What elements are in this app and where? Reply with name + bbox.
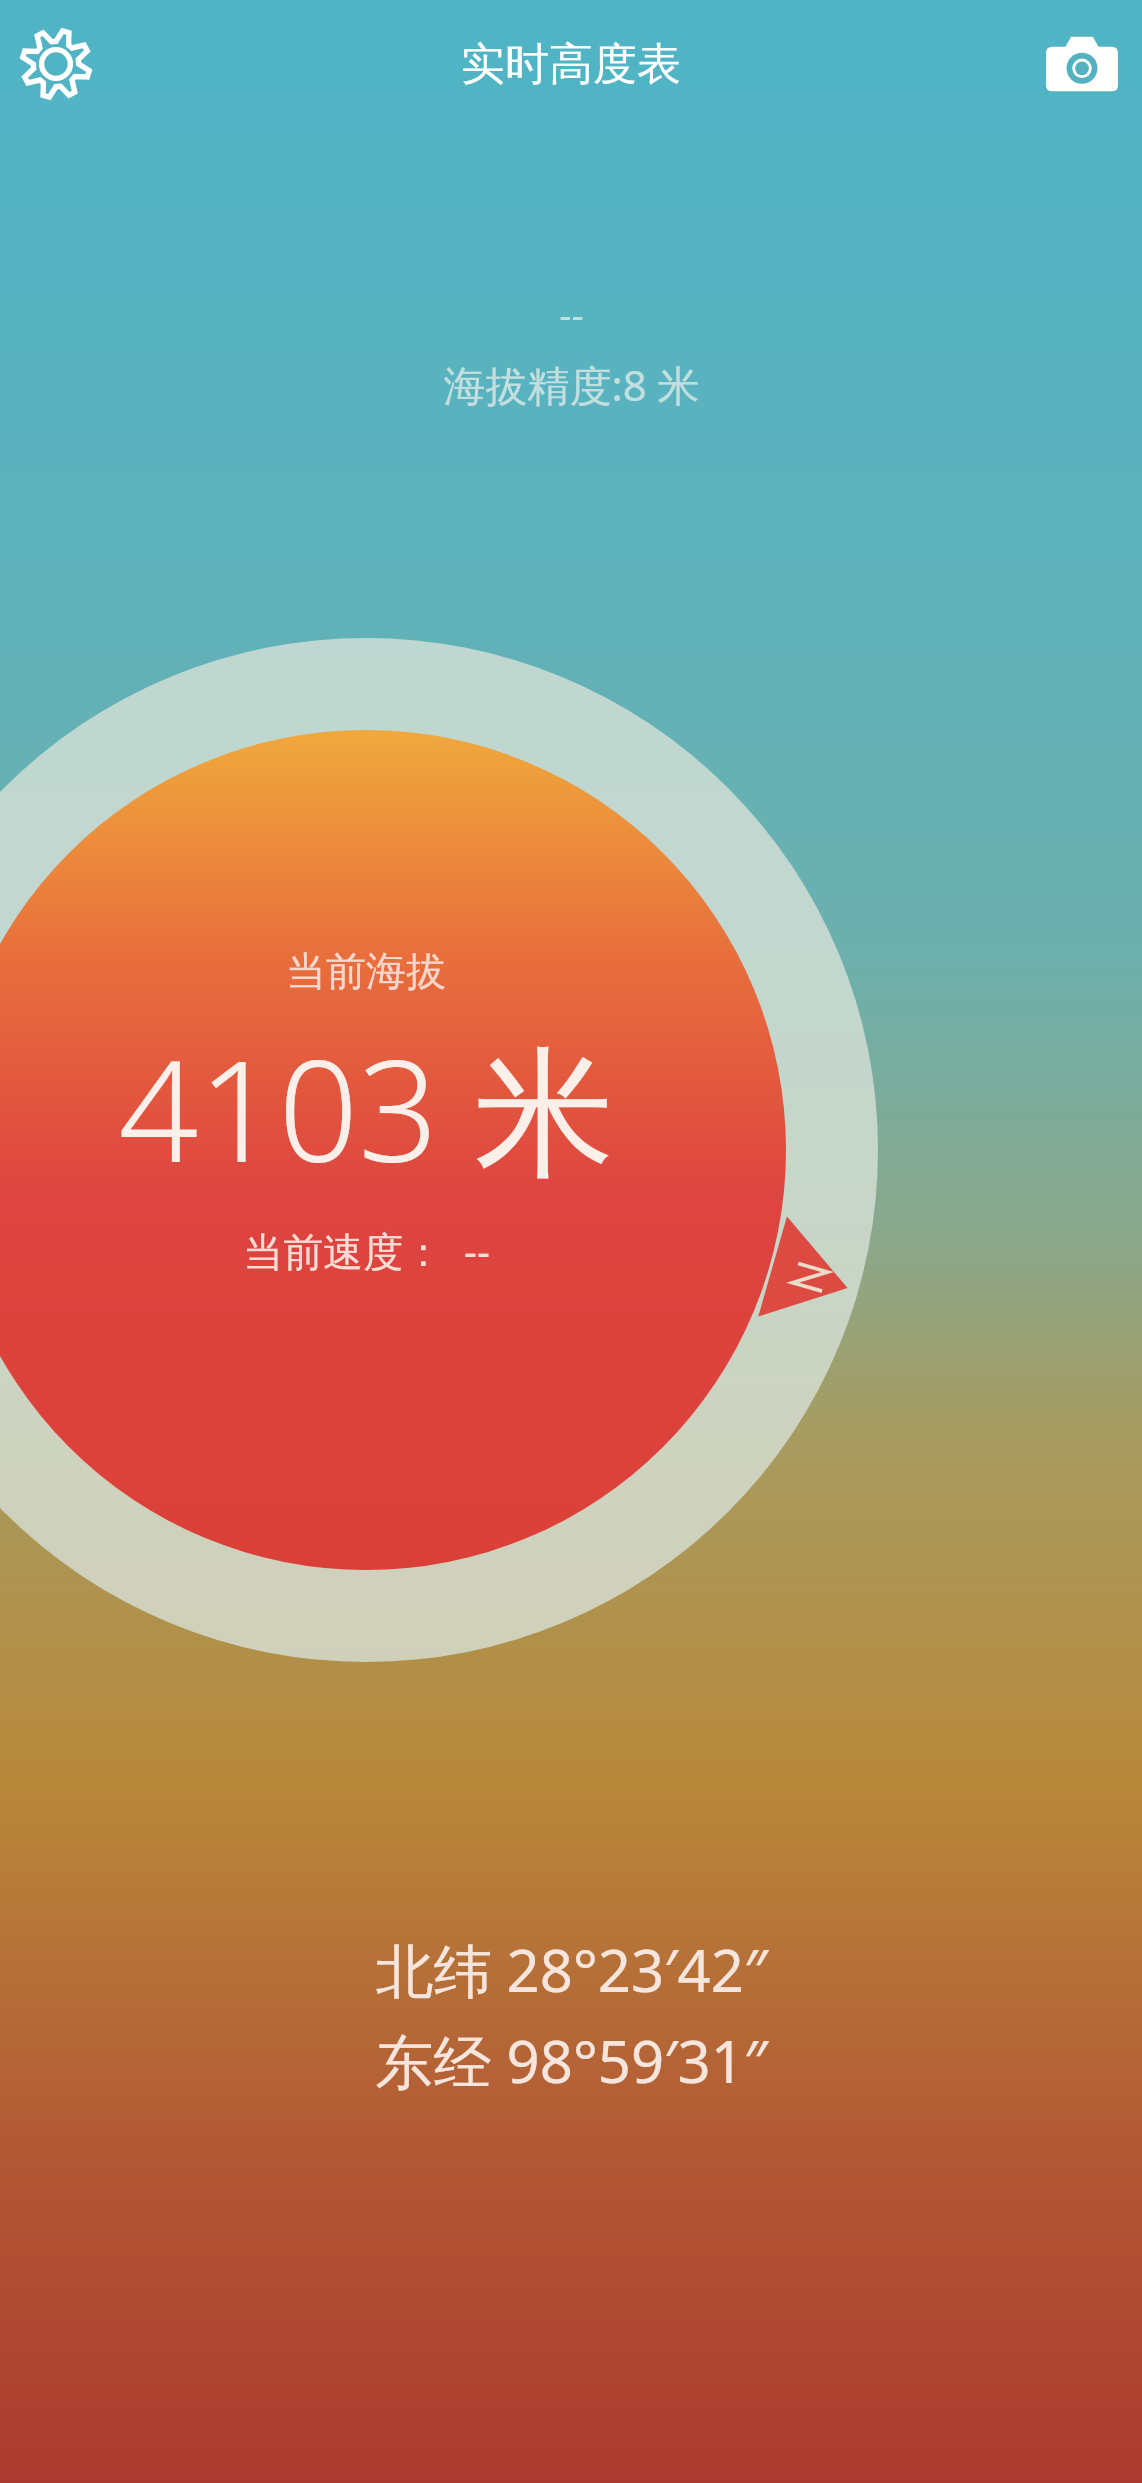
staticText: 北纬 28°23′42″ — [375, 1930, 768, 2009]
staticText: 当前速度： -- — [243, 1223, 490, 1278]
button[interactable]: Camera — [1034, 16, 1130, 112]
staticText: 海拔精度:8 米 — [443, 356, 700, 413]
staticText: 当前海拔 — [286, 946, 446, 996]
staticText: -- — [559, 288, 584, 340]
button[interactable]: 当前海拔 — [16, 946, 716, 1278]
staticText: 实时高度表 — [461, 37, 681, 92]
staticText: 东经 98°59′31″ — [375, 2021, 768, 2100]
button[interactable]: Settings — [8, 16, 104, 112]
staticText: 4103 米 — [118, 1012, 615, 1203]
